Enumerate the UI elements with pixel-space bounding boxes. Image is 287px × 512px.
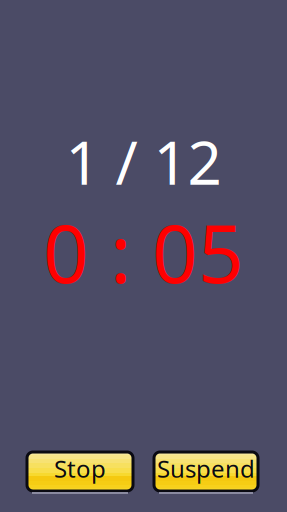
staticText: 1 / 12 xyxy=(65,122,221,201)
button[interactable]: Stop xyxy=(27,452,133,491)
staticText: Stop xyxy=(54,453,106,484)
staticText: Suspend xyxy=(157,453,255,484)
staticText: 0 : 05 xyxy=(43,199,244,305)
button[interactable]: Suspend xyxy=(154,452,258,491)
